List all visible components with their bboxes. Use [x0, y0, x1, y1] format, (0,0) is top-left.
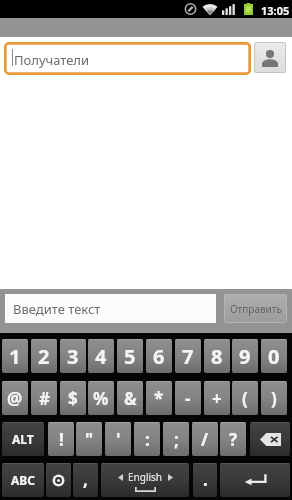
- button[interactable]: ": [76, 422, 102, 456]
- button[interactable]: #: [31, 381, 57, 415]
- staticText: 9: [239, 343, 251, 370]
- staticText: ,: [83, 468, 88, 491]
- button[interactable]: 1: [2, 339, 28, 373]
- staticText: 4: [95, 343, 107, 370]
- button[interactable]: $: [60, 381, 86, 415]
- button[interactable]: ': [105, 422, 131, 456]
- staticText: 7: [182, 343, 194, 370]
- button[interactable]: @: [2, 381, 28, 415]
- button[interactable]: ,: [73, 463, 98, 497]
- button[interactable]: 5: [117, 339, 143, 373]
- staticText: (: [242, 387, 248, 410]
- staticText: 8: [211, 343, 223, 370]
- staticText: *: [154, 387, 164, 410]
- staticText: -: [185, 387, 191, 410]
- staticText: +: [212, 387, 222, 410]
- button[interactable]: English: [101, 463, 189, 497]
- button[interactable]: Choose contact: [254, 42, 286, 73]
- staticText: @: [7, 387, 23, 410]
- button[interactable]: +: [204, 381, 230, 415]
- button[interactable]: [250, 422, 290, 456]
- staticText: %: [93, 387, 109, 410]
- staticText: 2: [38, 343, 50, 370]
- button[interactable]: %: [88, 381, 114, 415]
- staticText: 5: [124, 343, 136, 370]
- button[interactable]: 0: [261, 339, 287, 373]
- staticText: $: [68, 387, 78, 410]
- button[interactable]: 7: [175, 339, 201, 373]
- button[interactable]: Получатели: [4, 42, 251, 75]
- staticText: !: [59, 428, 64, 451]
- staticText: ALT: [12, 431, 34, 447]
- button[interactable]: ALT: [2, 422, 44, 456]
- staticText: 0: [268, 343, 280, 370]
- staticText: English: [128, 470, 163, 484]
- button[interactable]: [46, 463, 71, 497]
- staticText: ': [116, 428, 121, 451]
- button[interactable]: (: [232, 381, 258, 415]
- button[interactable]: &: [117, 381, 143, 415]
- staticText: .: [203, 468, 208, 491]
- button[interactable]: 8: [204, 339, 230, 373]
- button[interactable]: 9: [232, 339, 258, 373]
- button[interactable]: ?: [220, 422, 246, 456]
- staticText: 6: [153, 343, 165, 370]
- button[interactable]: !: [48, 422, 74, 456]
- staticText: ): [271, 387, 277, 410]
- staticText: 13:05: [261, 3, 290, 18]
- staticText: Отправить: [230, 302, 282, 316]
- button[interactable]: *: [146, 381, 172, 415]
- staticText: #: [39, 387, 50, 410]
- button[interactable]: Введите текст: [5, 294, 216, 323]
- button[interactable]: [220, 463, 290, 497]
- button[interactable]: -: [175, 381, 201, 415]
- staticText: &: [124, 387, 137, 410]
- button[interactable]: 3: [60, 339, 86, 373]
- button[interactable]: 6: [146, 339, 172, 373]
- staticText: Получатели: [14, 51, 90, 69]
- staticText: Введите текст: [13, 300, 101, 318]
- button[interactable]: /: [192, 422, 218, 456]
- button[interactable]: ): [261, 381, 287, 415]
- staticText: ?: [229, 428, 238, 451]
- button[interactable]: Отправить: [224, 294, 287, 323]
- staticText: 3: [67, 343, 79, 370]
- staticText: ;: [174, 428, 179, 451]
- staticText: :: [145, 428, 150, 451]
- button[interactable]: ABC: [2, 463, 44, 497]
- staticText: ": [85, 428, 94, 451]
- staticText: ABC: [11, 472, 35, 488]
- button[interactable]: .: [193, 463, 217, 497]
- button[interactable]: 2: [31, 339, 57, 373]
- button[interactable]: ;: [163, 422, 189, 456]
- staticText: 1: [9, 343, 21, 370]
- button[interactable]: :: [134, 422, 160, 456]
- button[interactable]: 4: [88, 339, 114, 373]
- staticText: /: [201, 428, 209, 451]
